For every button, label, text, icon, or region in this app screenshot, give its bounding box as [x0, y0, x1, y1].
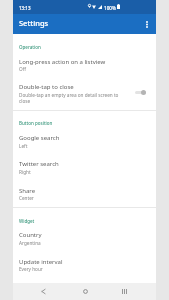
button[interactable]: Double-tap to close switch — [130, 83, 150, 101]
button[interactable]: More options — [137, 14, 156, 34]
button[interactable] — [13, 130, 156, 154]
staticText: Update interval — [19, 258, 63, 266]
button[interactable]: Back — [27, 283, 59, 300]
button[interactable] — [13, 183, 156, 207]
staticText: Every hour — [19, 266, 43, 272]
button[interactable]: Recent apps — [108, 283, 140, 300]
staticText: Off — [19, 66, 26, 72]
staticText: Double-tap to close — [19, 83, 74, 91]
staticText: 100% — [104, 5, 116, 11]
staticText: close — [19, 98, 31, 104]
staticText: Long-press action on a listview — [19, 58, 106, 66]
staticText: Country — [19, 231, 42, 239]
staticText: Right — [19, 169, 31, 175]
button[interactable] — [13, 156, 156, 180]
staticText: Button position — [19, 120, 53, 126]
staticText: Google search — [19, 134, 60, 142]
button[interactable] — [13, 227, 156, 251]
staticText: 13:13 — [19, 5, 31, 11]
staticText: Twitter search — [19, 160, 59, 168]
staticText: Center — [19, 195, 34, 201]
staticText: Share — [19, 187, 36, 195]
staticText: Operation — [19, 44, 41, 50]
staticText: Widget — [19, 218, 35, 224]
button[interactable]: Home — [69, 283, 101, 300]
staticText: Left — [19, 143, 28, 149]
button[interactable] — [13, 254, 156, 278]
staticText: Settings — [19, 18, 49, 28]
staticText: Double-tap an empty area on detail scree… — [19, 92, 119, 98]
staticText: Argentina — [19, 240, 41, 246]
button[interactable] — [13, 54, 156, 78]
